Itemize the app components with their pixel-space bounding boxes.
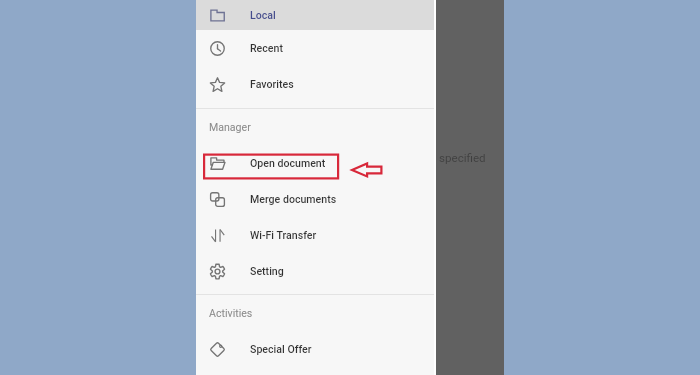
staticText: Activities xyxy=(209,307,253,319)
staticText: Manager xyxy=(209,121,251,133)
staticText: Merge documents xyxy=(250,193,337,205)
staticText: specified xyxy=(439,151,486,165)
staticText: Open document xyxy=(250,157,326,169)
staticText: Wi-Fi Transfer xyxy=(250,229,317,241)
button[interactable]: Recent xyxy=(196,30,434,66)
staticText: Setting xyxy=(250,265,284,277)
button[interactable]: Open document xyxy=(196,145,434,181)
staticText: Local xyxy=(250,9,276,21)
button[interactable]: Merge documents xyxy=(196,181,434,217)
staticText: Favorites xyxy=(250,78,294,90)
button[interactable]: Special Offer xyxy=(196,331,434,367)
staticText: Special Offer xyxy=(250,343,312,355)
button[interactable]: Wi-Fi Transfer xyxy=(196,217,434,253)
button[interactable]: Favorites xyxy=(196,66,434,102)
button[interactable]: Setting xyxy=(196,253,434,289)
button[interactable]: Local xyxy=(196,0,434,30)
staticText: Recent xyxy=(250,42,283,54)
